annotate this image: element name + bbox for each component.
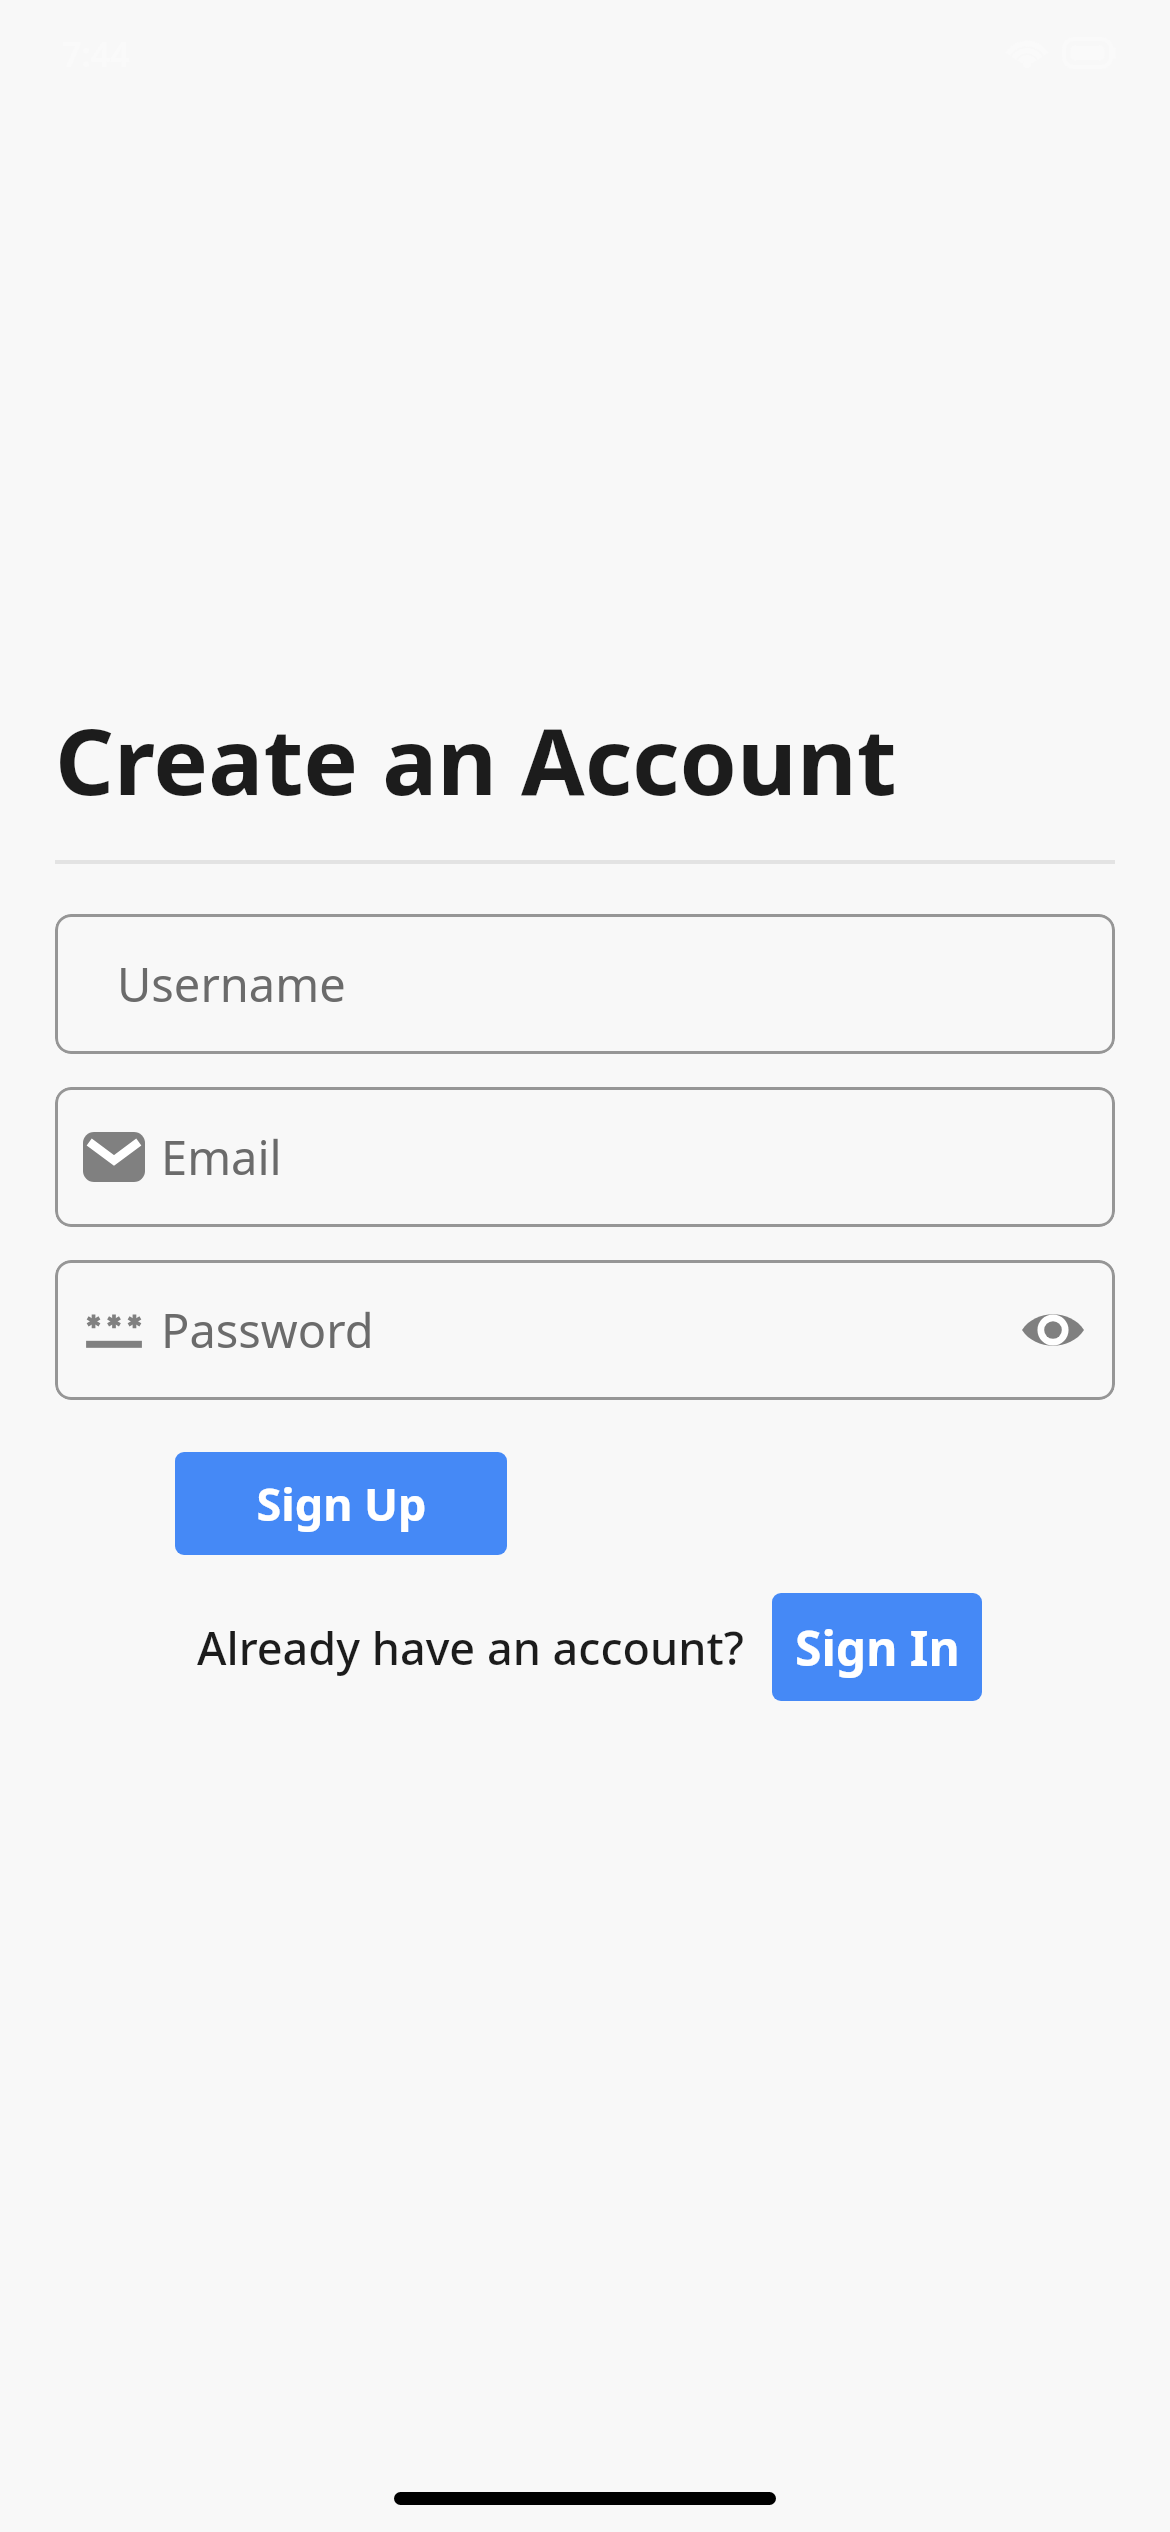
staticText: Password [161, 1298, 1007, 1362]
button[interactable]: Show password [1007, 1284, 1099, 1376]
button[interactable]: Sign Up [175, 1452, 507, 1555]
button[interactable]: Sign In [772, 1593, 982, 1701]
staticText: Sign In [795, 1615, 960, 1680]
staticText: Already have an account? [197, 1617, 744, 1678]
button[interactable]: Username [55, 914, 1115, 1054]
staticText: Sign Up [256, 1473, 427, 1534]
button[interactable]: Password [55, 1260, 1115, 1400]
staticText: Create an Account [55, 697, 897, 822]
button[interactable]: Email [55, 1087, 1115, 1227]
staticText: Username [117, 952, 1099, 1016]
staticText: Email [161, 1125, 1099, 1189]
